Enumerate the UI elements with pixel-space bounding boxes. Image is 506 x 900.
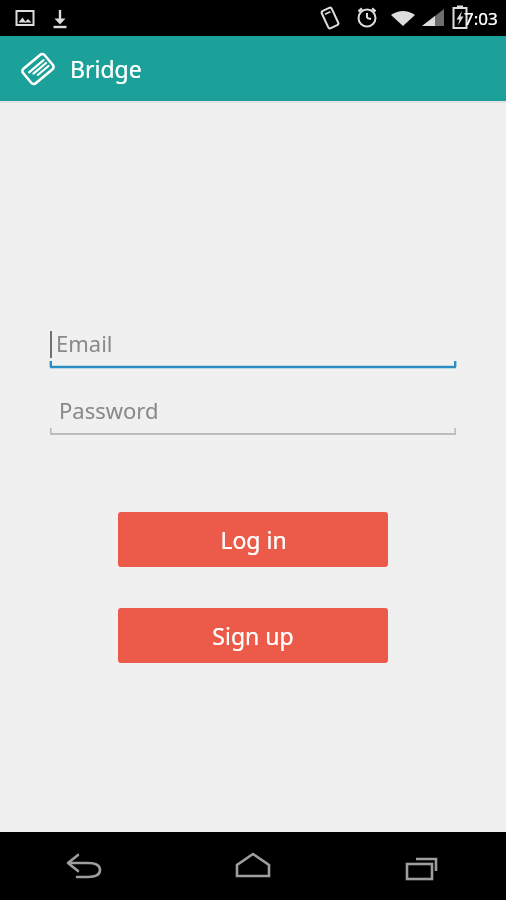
staticText: Password [59, 395, 159, 425]
button[interactable]: Sign up [118, 608, 388, 663]
staticText: Log in [220, 524, 287, 555]
button[interactable]: Log in [118, 512, 388, 567]
staticText: 7:03 [464, 7, 498, 30]
staticText: Sign up [212, 620, 294, 651]
button[interactable]: Password [50, 395, 456, 438]
button[interactable]: Email [50, 328, 456, 371]
button[interactable]: Home [168, 832, 337, 900]
button[interactable]: Bridge logo [18, 49, 58, 89]
button[interactable]: Recent apps [337, 832, 506, 900]
button[interactable]: Back [0, 832, 168, 900]
staticText: Email [56, 328, 113, 358]
staticText: Bridge [70, 53, 142, 84]
